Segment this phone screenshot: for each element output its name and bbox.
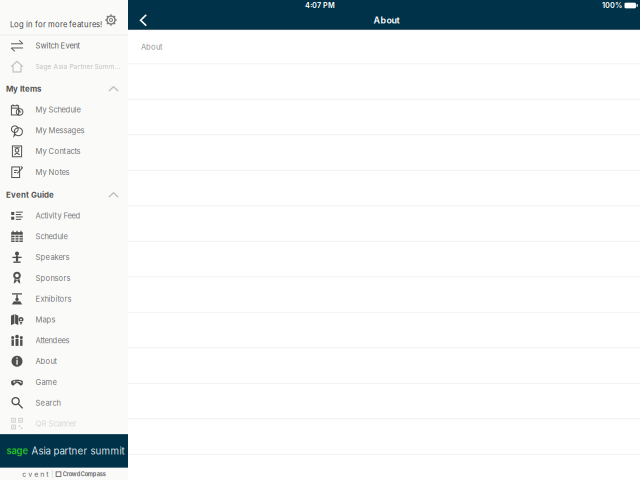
button[interactable]: Schedule xyxy=(0,226,128,247)
staticText: Asia partner summit xyxy=(28,445,124,457)
staticText: Exhibitors xyxy=(35,294,71,304)
staticText: About xyxy=(373,15,399,25)
button[interactable]: Sage Asia Partner Summ... xyxy=(0,56,128,77)
button[interactable]: Search xyxy=(0,393,128,413)
button[interactable]: Game xyxy=(0,372,128,393)
staticText: Game xyxy=(35,378,56,387)
button[interactable]: Switch Event xyxy=(0,35,128,56)
staticText: 100% xyxy=(602,1,622,10)
staticText: Speakers xyxy=(35,253,69,262)
button[interactable]: Back xyxy=(128,11,156,29)
staticText: Search xyxy=(35,398,60,408)
button[interactable]: Activity Feed xyxy=(0,205,128,226)
staticText: Attendees xyxy=(35,336,69,345)
staticText: 4:07 PM xyxy=(305,1,335,10)
staticText: My Notes xyxy=(35,168,69,177)
staticText: CrowdCompass xyxy=(63,471,106,478)
staticText: sage xyxy=(6,445,28,457)
staticText: My Schedule xyxy=(35,105,80,114)
button[interactable]: Exhibitors xyxy=(0,288,128,309)
staticText: | xyxy=(51,470,53,479)
button[interactable]: My Contacts xyxy=(0,141,128,162)
staticText: Event Guide xyxy=(6,190,54,200)
staticText: Sage Asia Partner Summ... xyxy=(35,63,120,70)
button[interactable]: QR Scanner xyxy=(0,413,128,434)
button[interactable]: My Schedule xyxy=(0,99,128,120)
button[interactable]: Maps xyxy=(0,309,128,330)
button[interactable]: Log in for more features! xyxy=(0,0,128,34)
staticText: Maps xyxy=(35,315,55,324)
staticText: c v e n t xyxy=(22,470,48,478)
staticText: My Messages xyxy=(35,126,84,135)
button[interactable]: My Notes xyxy=(0,162,128,182)
staticText: Sponsors xyxy=(35,274,70,283)
button[interactable]: About xyxy=(128,20,640,64)
button[interactable]: Speakers xyxy=(0,247,128,268)
button[interactable]: About xyxy=(0,351,128,372)
staticText: Activity Feed xyxy=(35,211,80,220)
staticText: About xyxy=(35,357,56,366)
button[interactable]: Event Guide xyxy=(0,184,128,205)
button[interactable]: sage xyxy=(0,434,128,468)
button[interactable]: Sponsors xyxy=(0,268,128,289)
staticText: My Items xyxy=(6,84,41,94)
staticText: QR Scanner xyxy=(35,419,76,428)
staticText: Switch Event xyxy=(35,41,79,50)
staticText: My Contacts xyxy=(35,147,80,156)
button[interactable]: My Messages xyxy=(0,120,128,141)
button[interactable]: Attendees xyxy=(0,330,128,351)
button[interactable]: My Items xyxy=(0,78,128,99)
staticText: Log in for more features! xyxy=(10,20,102,29)
staticText: Schedule xyxy=(35,232,67,241)
staticText: About xyxy=(141,42,162,51)
